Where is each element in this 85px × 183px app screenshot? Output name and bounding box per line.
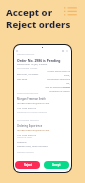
button[interactable]: Reject bbox=[15, 161, 40, 169]
staticText: Order No. 2986 is Pending bbox=[17, 58, 61, 63]
staticText: Extra hot, no sugar bbox=[17, 72, 39, 75]
staticText: £14.50 bbox=[44, 86, 70, 89]
staticText: Accept or Reject orders bbox=[6, 6, 71, 31]
button[interactable]: Accept bbox=[44, 161, 69, 169]
staticText: PURCHASE DETAILS bbox=[17, 92, 39, 95]
staticText: Delivery fees, taxes included bbox=[17, 145, 48, 148]
staticText: +44 7700 900123 bbox=[17, 133, 37, 136]
staticText: morganfreeman@gmail.com bbox=[17, 128, 50, 131]
button[interactable]: Orders list bbox=[64, 6, 78, 17]
staticText: Leave at door bbox=[17, 135, 33, 138]
staticText: Delivered to home address bbox=[17, 110, 48, 113]
staticText: CUSTOMER NOTES bbox=[17, 67, 38, 70]
staticText: CUSTOMER DETAILS bbox=[17, 119, 39, 122]
staticText: Morgan Freeman Smith bbox=[17, 97, 46, 101]
staticText: Accept bbox=[52, 163, 61, 167]
staticText: ORDER DETAILS bbox=[17, 53, 35, 56]
staticText: Subtotal bbox=[17, 140, 27, 143]
staticText: morganfreeman@gmail.com bbox=[17, 101, 50, 104]
staticText: Gift wrap bbox=[17, 77, 28, 80]
staticText: Placed Mon 10 Jan, 2:35pm bbox=[17, 62, 48, 65]
staticText: Ordering Experience bbox=[17, 124, 43, 128]
staticText: Reject bbox=[24, 163, 32, 167]
staticText: Lorem ipsum dolor sit amet, consectetur … bbox=[44, 70, 70, 92]
staticText: ORDER ACTION bbox=[17, 151, 34, 154]
staticText: +44 7700 900123 bbox=[17, 106, 37, 109]
